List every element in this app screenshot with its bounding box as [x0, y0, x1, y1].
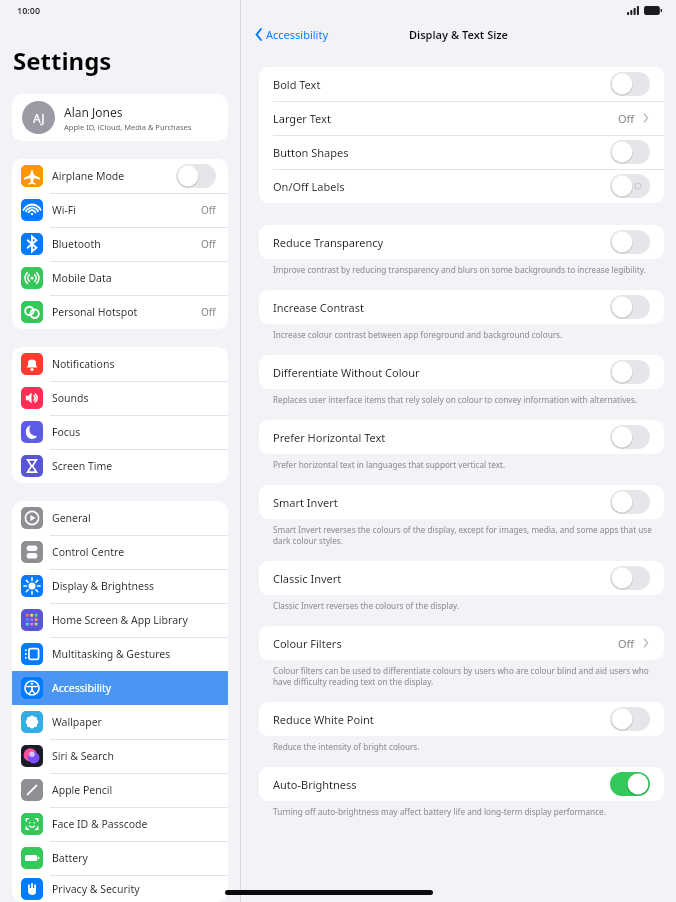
staticText: Smart Invert reverses the colours of the…: [273, 524, 654, 546]
button[interactable]: Colour Filters: [259, 626, 664, 660]
button[interactable]: Off: [610, 230, 650, 254]
staticText: Personal Hotspot: [52, 305, 138, 319]
button[interactable]: Wallpaper: [12, 705, 228, 739]
button[interactable]: Differentiate Without Colour: [259, 355, 664, 389]
button[interactable]: Mobile Data: [12, 261, 228, 295]
button[interactable]: Smart Invert: [259, 485, 664, 519]
button[interactable]: Reduce Transparency: [259, 225, 664, 259]
button[interactable]: Off: [176, 164, 216, 188]
button[interactable]: Accessibility: [241, 20, 335, 48]
staticText: Wi-Fi: [52, 203, 77, 217]
button[interactable]: Button Shapes: [259, 135, 664, 169]
staticText: Differentiate Without Colour: [273, 365, 420, 380]
button[interactable]: Apple Pencil: [12, 773, 228, 807]
staticText: Accessibility: [266, 27, 329, 42]
staticText: Mobile Data: [52, 271, 112, 285]
button[interactable]: Sounds: [12, 381, 228, 415]
button[interactable]: Classic Invert: [259, 561, 664, 595]
staticText: Settings: [13, 44, 112, 77]
staticText: Colour Filters: [273, 636, 342, 651]
staticText: Button Shapes: [273, 145, 349, 160]
button[interactable]: Bluetooth: [12, 227, 228, 261]
button[interactable]: Home Screen & App Library: [12, 603, 228, 637]
staticText: Off: [201, 203, 216, 217]
staticText: Off: [618, 111, 635, 126]
button[interactable]: Off: [610, 72, 650, 96]
staticText: Prefer horizontal text in languages that…: [273, 459, 506, 470]
button[interactable]: Siri & Search: [12, 739, 228, 773]
staticText: Wallpaper: [52, 715, 102, 729]
staticText: Display & Text Size: [409, 27, 509, 42]
staticText: Battery: [52, 851, 88, 865]
staticText: AJ: [33, 110, 45, 126]
staticText: Larger Text: [273, 111, 331, 126]
staticText: Multitasking & Gestures: [52, 647, 171, 661]
button[interactable]: Off: [610, 174, 650, 198]
staticText: Off: [201, 237, 216, 251]
staticText: Colour filters can be used to differenti…: [273, 665, 654, 687]
button[interactable]: Larger Text: [259, 101, 664, 135]
button[interactable]: Off: [610, 140, 650, 164]
button[interactable]: Wi-Fi: [12, 193, 228, 227]
button[interactable]: Off: [610, 566, 650, 590]
button[interactable]: AJ: [12, 94, 228, 141]
staticText: Control Centre: [52, 545, 125, 559]
button[interactable]: Off: [610, 425, 650, 449]
button[interactable]: On: [610, 772, 650, 796]
button[interactable]: On/Off Labels: [259, 169, 664, 203]
button[interactable]: Notifications: [12, 347, 228, 381]
staticText: Replaces user interface items that rely …: [273, 394, 638, 405]
button[interactable]: Privacy & Security: [12, 875, 228, 902]
staticText: Classic Invert: [273, 571, 342, 586]
staticText: Off: [618, 636, 635, 651]
button[interactable]: Focus: [12, 415, 228, 449]
button[interactable]: Screen Time: [12, 449, 228, 483]
button[interactable]: Multitasking & Gestures: [12, 637, 228, 671]
button[interactable]: Off: [610, 295, 650, 319]
button[interactable]: Off: [610, 490, 650, 514]
button[interactable]: Accessibility: [12, 671, 228, 705]
button[interactable]: Auto-Brightness: [259, 767, 664, 801]
staticText: Smart Invert: [273, 495, 338, 510]
staticText: 10:00: [17, 4, 41, 16]
button[interactable]: Battery: [12, 841, 228, 875]
staticText: Screen Time: [52, 459, 113, 473]
staticText: Siri & Search: [52, 749, 114, 763]
staticText: Airplane Mode: [52, 169, 125, 183]
staticText: Reduce the intensity of bright colours.: [273, 741, 420, 752]
staticText: Accessibility: [52, 681, 112, 695]
button[interactable]: Prefer Horizontal Text: [259, 420, 664, 454]
button[interactable]: Personal Hotspot: [12, 295, 228, 329]
staticText: Notifications: [52, 357, 115, 371]
staticText: Display & Brightness: [52, 579, 155, 593]
staticText: Increase Contrast: [273, 300, 364, 315]
button[interactable]: Airplane Mode: [12, 159, 228, 193]
staticText: Increase colour contrast between app for…: [273, 329, 563, 340]
button[interactable]: Increase Contrast: [259, 290, 664, 324]
staticText: Apple ID, iCloud, Media & Purchases: [64, 122, 192, 132]
staticText: Alan Jones: [64, 104, 123, 120]
staticText: Classic Invert reverses the colours of t…: [273, 600, 460, 611]
staticText: Focus: [52, 425, 81, 439]
staticText: Reduce White Point: [273, 712, 374, 727]
button[interactable]: General: [12, 501, 228, 535]
button[interactable]: Off: [610, 360, 650, 384]
staticText: Turning off auto-brightness may affect b…: [273, 806, 606, 817]
staticText: Improve contrast by reducing transparenc…: [273, 264, 646, 275]
staticText: Bluetooth: [52, 237, 101, 251]
staticText: General: [52, 511, 91, 525]
staticText: Sounds: [52, 391, 89, 405]
button[interactable]: Reduce White Point: [259, 702, 664, 736]
staticText: Prefer Horizontal Text: [273, 430, 386, 445]
staticText: Apple Pencil: [52, 783, 113, 797]
staticText: Home Screen & App Library: [52, 613, 188, 627]
button[interactable]: Off: [610, 707, 650, 731]
staticText: Privacy & Security: [52, 882, 140, 896]
button[interactable]: Control Centre: [12, 535, 228, 569]
staticText: Bold Text: [273, 77, 321, 92]
staticText: Reduce Transparency: [273, 235, 384, 250]
button[interactable]: Bold Text: [259, 67, 664, 101]
button[interactable]: Display & Brightness: [12, 569, 228, 603]
button[interactable]: Face ID & Passcode: [12, 807, 228, 841]
staticText: Off: [201, 305, 216, 319]
